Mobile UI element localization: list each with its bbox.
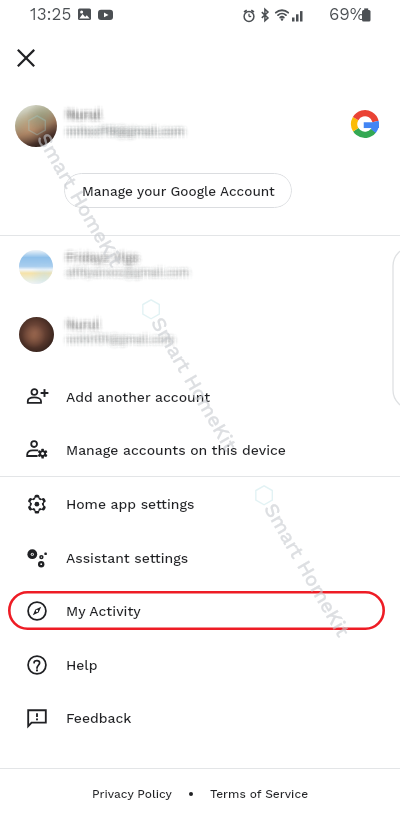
button[interactable]: Terms of Service [210,787,309,801]
staticText: alfdyanxoz@gmail.com [63,270,187,283]
staticText: Nurul [69,314,103,329]
staticText: Fridayz Vlgs [69,249,142,264]
staticText: Nurul [66,102,101,117]
staticText: alfdyanxoz@gmail.com [63,269,187,282]
staticText: nnhxxf18@gmail.com [63,125,182,138]
staticText: Fridayz Vlgs [65,251,138,266]
staticText: Nurul [70,107,105,122]
staticText: Nurul [66,110,101,125]
staticText: Fridayz Vlgs [69,251,142,266]
staticText: Nurul [63,321,97,336]
button[interactable]: My Activity [0,588,400,634]
staticText: nnhh101@gmail.com [67,338,176,351]
staticText: Fridayz Vlgs [66,245,139,260]
staticText: Nurul [63,104,98,119]
staticText: nnhh101@gmail.com [65,337,174,350]
staticText: Nurul [69,102,104,117]
staticText: Nurul [62,106,97,121]
staticText: Nurul [66,106,101,121]
button[interactable]: Nurul [0,96,400,156]
staticText: alfdyanxoz@gmail.com [67,271,191,284]
staticText: Fridayz Vlgs [70,246,143,261]
staticText: Nurul [70,320,104,335]
staticText: nnhxxf18@gmail.com [67,129,186,142]
staticText: Nurul [66,103,101,118]
button[interactable]: Manage your Google Account [64,173,292,208]
staticText: Nurul [69,318,103,333]
staticText: nnhxxf18@gmail.com [69,128,188,141]
staticText: Nurul [62,108,97,123]
staticText: nnhxxf18@gmail.com [67,123,186,136]
staticText: Nurul [67,112,102,127]
staticText: alfdyanxoz@gmail.com [65,271,189,284]
staticText: Nurul [62,111,97,126]
button[interactable]: Manage accounts on this device [0,427,400,473]
button[interactable]: Google [344,103,386,145]
button[interactable]: Assistant settings [0,535,400,581]
staticText: Fridayz Vlgs [67,255,140,270]
staticText: Nurul [71,106,106,121]
staticText: nnhh101@gmail.com [69,336,178,349]
staticText: Nurul [70,313,104,328]
staticText: Nurul [63,317,97,332]
button[interactable]: Add another account [0,374,400,420]
button[interactable]: Nurul [0,309,400,359]
button[interactable]: Fridayz Vlgs [0,242,400,292]
button[interactable]: Home app settings [0,481,400,527]
staticText: nnhxxf18@gmail.com [62,124,181,137]
staticText: alfdyanxoz@gmail.com [67,261,191,274]
staticText: Fridayz Vlgs [69,250,142,265]
staticText: alfdyanxoz@gmail.com [71,267,195,280]
staticText: nnhxxf18@gmail.com [67,127,186,140]
staticText: Nurul [65,314,99,329]
staticText: Nurul [69,316,103,331]
staticText: alfdyanxoz@gmail.com [61,267,185,280]
staticText: alfdyanxoz@gmail.com [63,266,187,279]
button[interactable]: Close [6,38,46,78]
staticText: alfdyanxoz@gmail.com [69,267,193,280]
staticText: nnhh101@gmail.com [66,329,175,342]
staticText: Nurul [67,322,101,337]
staticText: Fridayz Vlgs [70,247,143,262]
staticText: nnhh101@gmail.com [65,329,174,342]
staticText: nnhh101@gmail.com [62,336,171,349]
staticText: Nurul [70,108,105,123]
staticText: Nurul [71,108,106,123]
staticText: Nurul [65,102,100,117]
staticText: Fridayz Vlgs [69,253,142,268]
staticText: Nurul [65,313,99,328]
staticText: Fridayz Vlgs [66,249,139,264]
staticText: Fridayz Vlgs [71,249,144,264]
staticText: My Activity [66,603,141,619]
staticText: nnhxxf18@gmail.com [69,125,188,138]
staticText: 13:25 [30,4,72,24]
staticText: Nurul [69,104,104,119]
staticText: alfdyanxoz@gmail.com [65,270,189,283]
staticText: alfdyanxoz@gmail.com [62,269,186,282]
staticText: nnhxxf18@gmail.com [70,125,189,138]
staticText: Nurul [66,320,100,335]
staticText: nnhh101@gmail.com [61,333,170,346]
staticText: nnhh101@gmail.com [70,336,179,349]
staticText: Nurul [61,317,95,332]
staticText: Fridayz Vlgs [65,246,138,261]
button[interactable]: Feedback [0,695,400,741]
staticText: alfdyanxoz@gmail.com [61,266,185,279]
staticText: Nurul [63,314,97,329]
staticText: Nurul [65,321,99,336]
button[interactable]: Help [0,642,400,688]
staticText: nnhxxf18@gmail.com [63,120,182,133]
staticText: nnhxxf18@gmail.com [61,124,180,137]
staticText: Nurul [63,316,97,331]
staticText: Fridayz Vlgs [67,253,140,268]
staticText: nnhxxf18@gmail.com [69,124,188,137]
staticText: Nurul [63,318,97,333]
staticText: nnhh101@gmail.com [67,333,176,346]
staticText: nnhh101@gmail.com [70,330,179,343]
button[interactable]: Privacy Policy [92,787,172,801]
staticText: nnhh101@gmail.com [70,334,179,347]
staticText: nnhh101@gmail.com [63,332,172,345]
staticText: alfdyanxoz@gmail.com [70,266,194,279]
staticText: Nurul [67,110,102,125]
staticText: nnhh101@gmail.com [62,329,171,342]
